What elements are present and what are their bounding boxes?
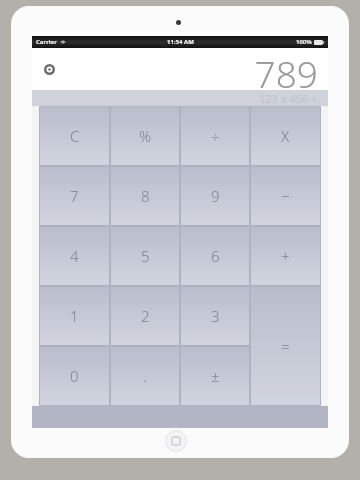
- staticText: 100%: [296, 38, 312, 46]
- button[interactable]: 8: [110, 166, 180, 226]
- button[interactable]: 3: [180, 286, 250, 346]
- button[interactable]: 7: [39, 166, 110, 226]
- staticText: 789: [254, 48, 318, 90]
- button[interactable]: .: [110, 346, 180, 406]
- button[interactable]: 1: [39, 286, 110, 346]
- button[interactable]: 4: [39, 226, 110, 286]
- staticText: ±: [211, 366, 220, 386]
- staticText: .: [143, 366, 147, 386]
- staticText: Carrier: [36, 38, 57, 46]
- staticText: %: [139, 126, 152, 146]
- button[interactable]: −: [250, 166, 321, 226]
- staticText: X: [281, 126, 290, 146]
- button[interactable]: 0: [39, 346, 110, 406]
- staticText: 2: [141, 306, 150, 326]
- button[interactable]: 9: [180, 166, 250, 226]
- staticText: ÷: [211, 126, 220, 146]
- staticText: 9: [211, 186, 220, 206]
- staticText: 3: [211, 306, 220, 326]
- staticText: 123 x 456 +: [259, 91, 318, 106]
- button[interactable]: 6: [180, 226, 250, 286]
- staticText: −: [281, 186, 290, 206]
- button[interactable]: X: [250, 106, 321, 166]
- button[interactable]: C: [39, 106, 110, 166]
- staticText: 6: [211, 246, 220, 266]
- staticText: =: [281, 336, 290, 356]
- button[interactable]: %: [110, 106, 180, 166]
- staticText: +: [281, 246, 290, 266]
- button[interactable]: 5: [110, 226, 180, 286]
- button[interactable]: +: [250, 226, 321, 286]
- button[interactable]: Info: [44, 64, 55, 75]
- button[interactable]: ÷: [180, 106, 250, 166]
- staticText: 1: [70, 306, 79, 326]
- staticText: 11:54 AM: [167, 38, 194, 46]
- staticText: 8: [141, 186, 150, 206]
- button[interactable]: 2: [110, 286, 180, 346]
- button[interactable]: Home: [165, 430, 187, 452]
- staticText: C: [70, 126, 80, 146]
- button[interactable]: =: [250, 286, 321, 406]
- staticText: 4: [70, 246, 79, 266]
- button[interactable]: ±: [180, 346, 250, 406]
- staticText: 7: [70, 186, 79, 206]
- staticText: 0: [70, 366, 79, 386]
- staticText: 5: [141, 246, 150, 266]
